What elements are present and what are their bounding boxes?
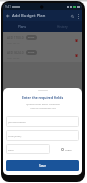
staticText: Plans [18,25,27,29]
staticText: Quickly from every customer [26,102,60,105]
staticText: History [57,25,68,29]
staticText: Login [65,148,72,151]
button[interactable]: Back [4,12,11,19]
staticText: active [28,36,35,39]
staticText: Save [39,164,46,168]
button[interactable]: Login [61,148,72,151]
button[interactable]: Total (BHD) [6,130,79,141]
button[interactable]: More options [75,13,81,19]
button[interactable]: Delete [73,52,79,58]
button[interactable]: Search [69,13,75,19]
staticText: AED 3624.0 [7,51,24,55]
staticText: active [28,51,35,54]
button[interactable]: Save [6,160,79,171]
staticText: AED 1700.0 [7,36,24,40]
button[interactable]: Date [6,144,50,154]
button[interactable]: Delete [73,37,79,43]
staticText: Job Description [8,120,26,123]
button[interactable]: History [42,21,82,32]
staticText: Plan to customers list [30,106,56,109]
staticText: Enter the required fields [22,95,64,100]
staticText: 9:41 [5,5,11,9]
button[interactable]: AED 1700.0 [3,32,82,47]
staticText: Date [8,148,14,151]
button[interactable]: Plans [3,21,42,32]
staticText: Total (BHD) [8,134,22,137]
button[interactable]: Job Description [6,116,79,127]
staticText: Add Budget Plan [12,13,46,19]
button[interactable]: AED 3624.0 [3,47,82,62]
